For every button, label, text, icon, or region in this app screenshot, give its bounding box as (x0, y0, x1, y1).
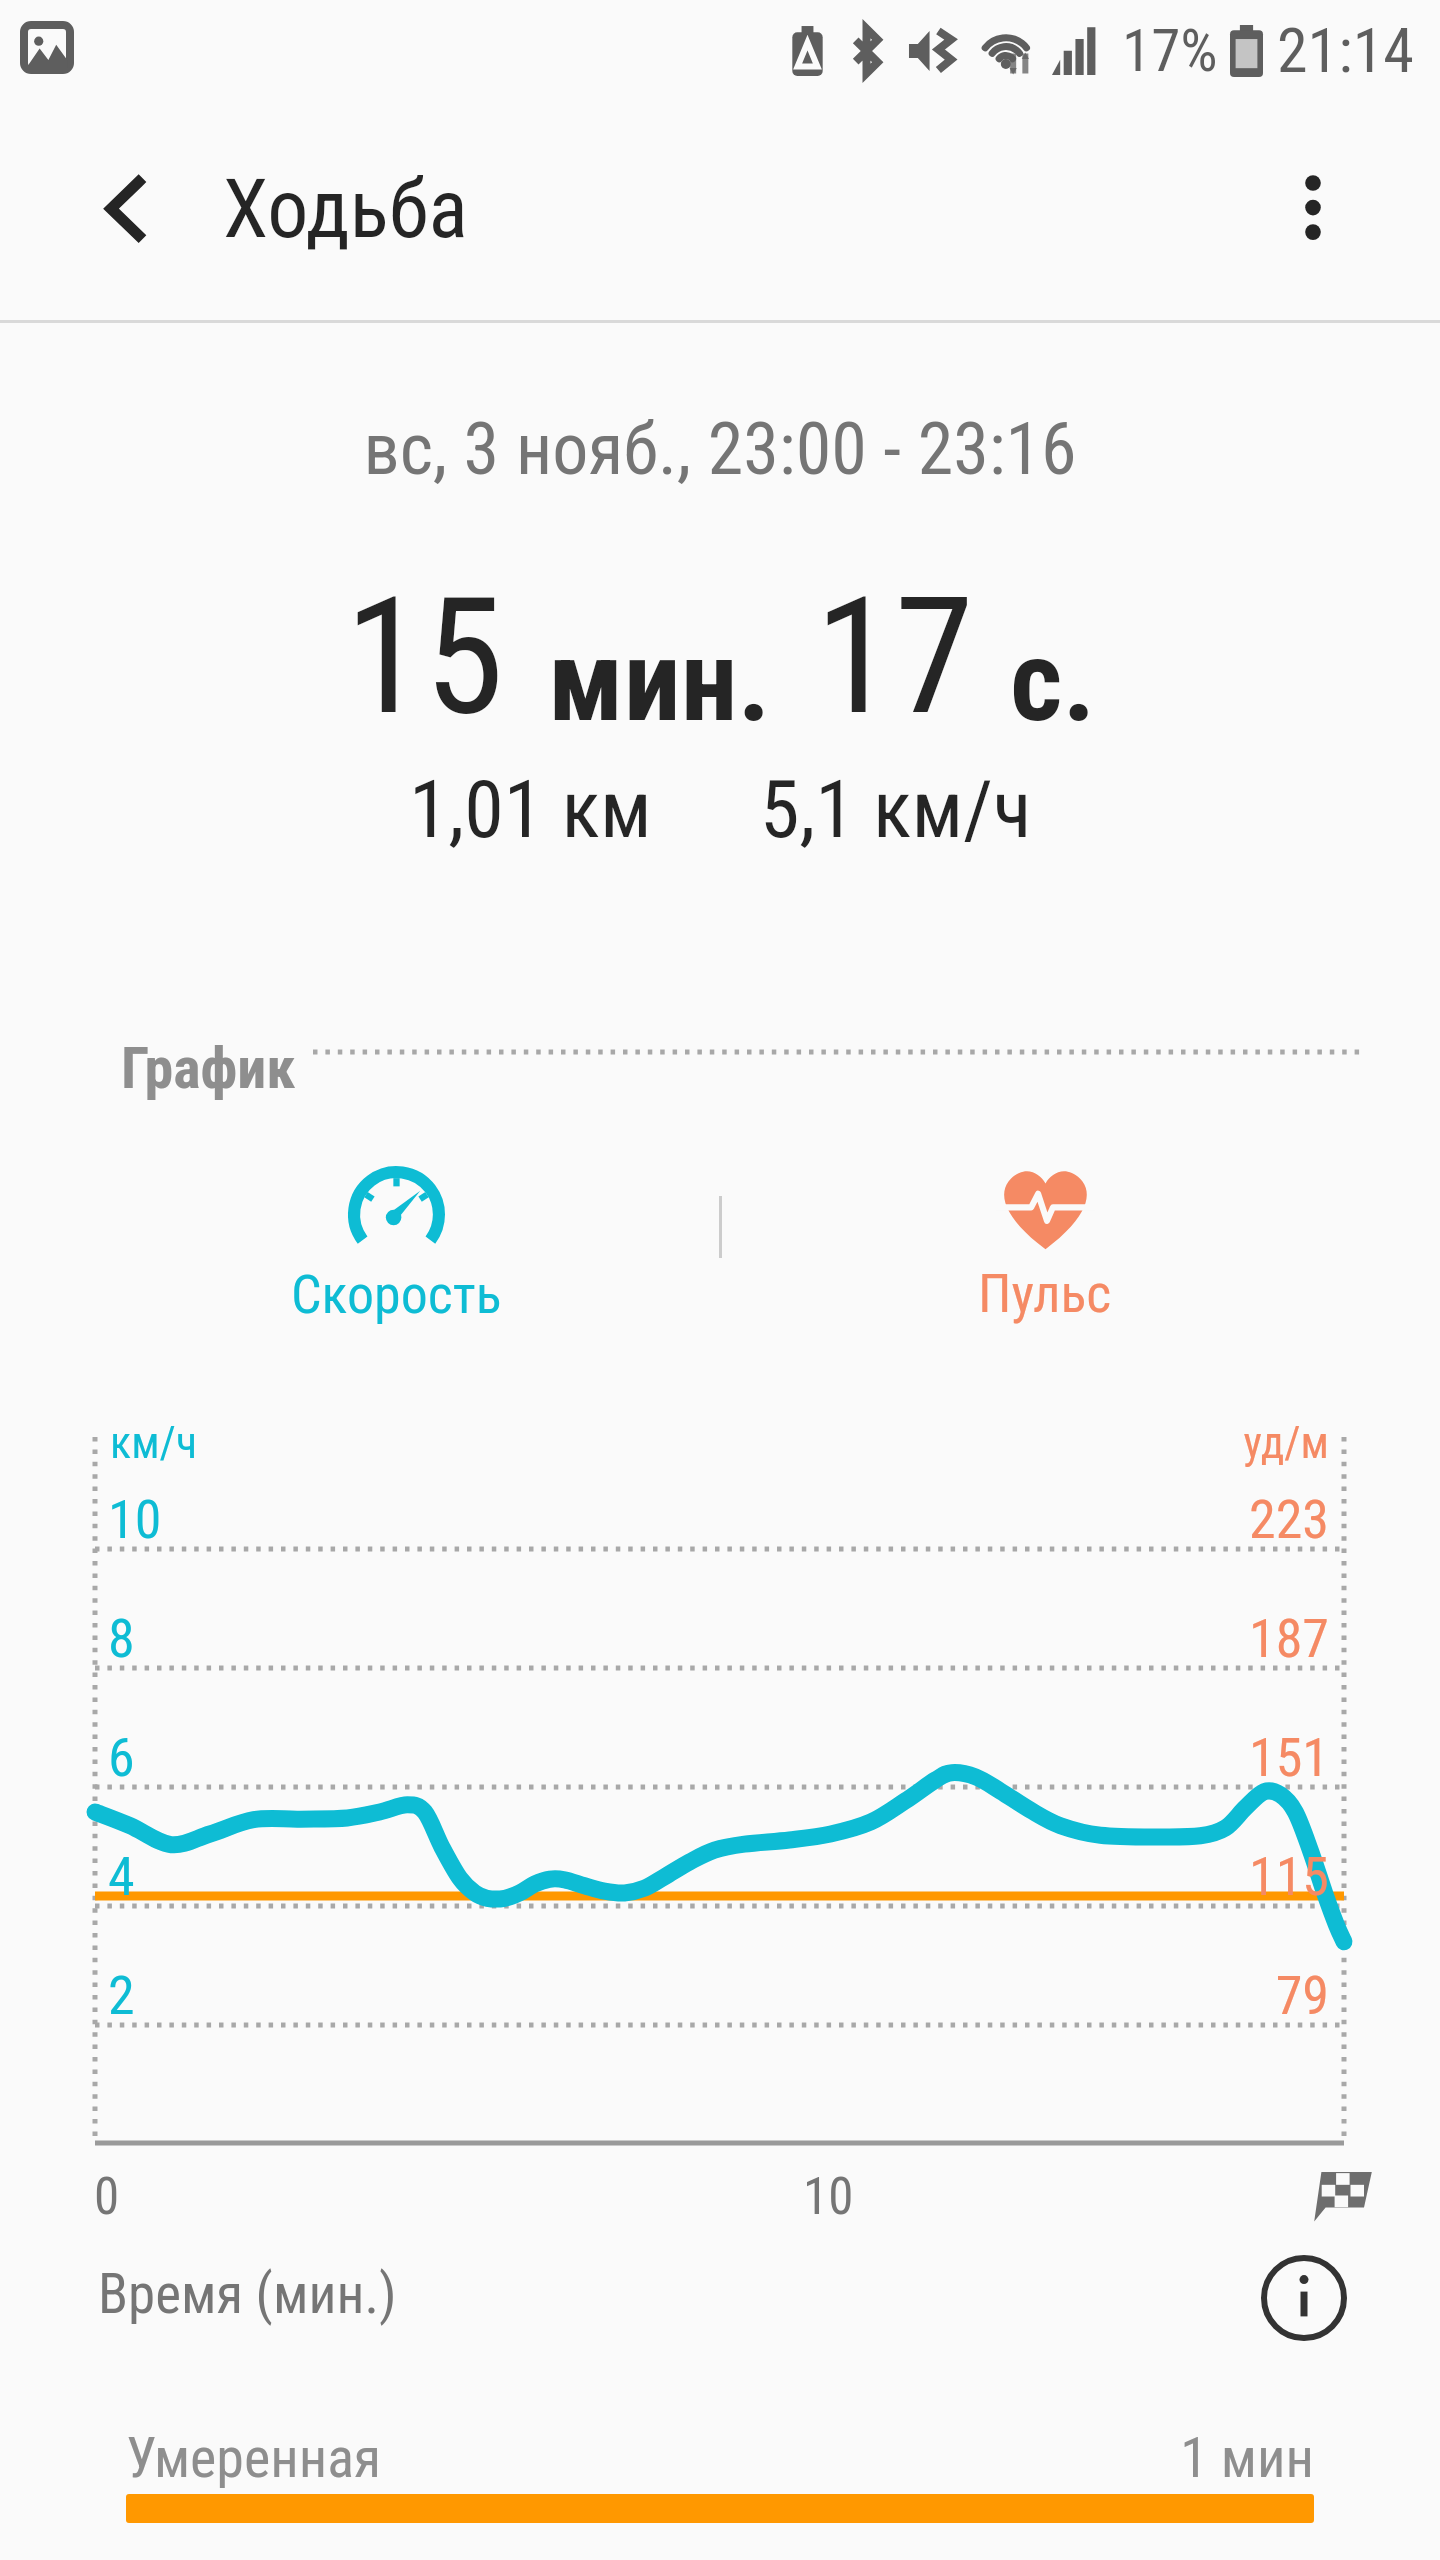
staticText: 2 (108, 1964, 135, 2027)
button[interactable]: More options (1258, 155, 1368, 265)
staticText: 79 (1089, 1964, 1329, 2027)
staticText: 151 (1089, 1726, 1329, 1789)
staticText: 10 (108, 1488, 162, 1551)
button[interactable]: Information (1260, 2254, 1348, 2342)
staticText: 17 (815, 563, 974, 752)
staticText: 17% (1122, 16, 1218, 85)
staticText: Умеренная (126, 2425, 382, 2491)
staticText: 6 (108, 1726, 135, 1789)
staticText: Пульс (978, 1262, 1112, 1325)
button[interactable]: Back (72, 155, 182, 265)
staticText: Скорость (291, 1263, 502, 1326)
staticText: 0 (94, 2167, 120, 2227)
staticText: км/ч (110, 1417, 198, 1469)
button[interactable]: Скорость (276, 1166, 516, 1356)
staticText: 115 (1089, 1845, 1329, 1908)
button[interactable]: Пульс (925, 1168, 1165, 1358)
staticText: 5,1 км/ч (760, 763, 1032, 857)
staticText: 1 мин (1000, 2425, 1314, 2491)
staticText: уд/м (1089, 1417, 1329, 1469)
staticText: вс, 3 нояб., 23:00 - 23:16 (0, 407, 1440, 491)
staticText: Ходьба (223, 161, 468, 257)
staticText: 15 (345, 563, 504, 752)
staticText: 187 (1089, 1607, 1329, 1670)
staticText: 8 (108, 1607, 135, 1670)
staticText: График (121, 1034, 296, 1102)
staticText: 1,01 км (409, 763, 652, 857)
staticText: мин. (548, 614, 771, 748)
staticText: 4 (108, 1845, 135, 1908)
staticText: с. (1010, 614, 1096, 748)
staticText: 223 (1089, 1488, 1329, 1551)
staticText: 21:14 (1277, 14, 1414, 87)
staticText: 10 (803, 2167, 854, 2227)
staticText: Время (мин.) (98, 2262, 397, 2326)
